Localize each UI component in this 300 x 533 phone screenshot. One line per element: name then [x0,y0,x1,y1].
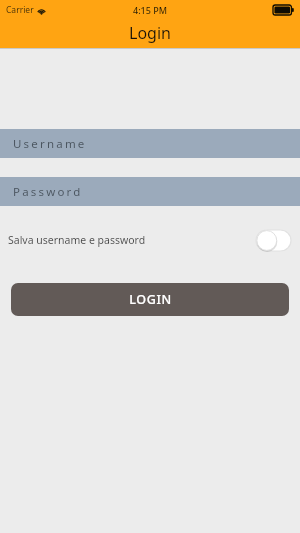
staticText: Username [13,136,87,152]
button[interactable]: Salva username e password toggle [256,230,291,251]
button[interactable]: LOGIN [11,283,289,316]
staticText: Salva username e password [8,233,146,247]
button[interactable]: Password [0,177,300,206]
button[interactable]: Username [0,129,300,158]
staticText: Login [129,22,171,44]
staticText: Carrier [6,4,34,16]
staticText: Password [13,184,83,200]
staticText: LOGIN [129,291,172,308]
button[interactable]: Salva username e password [0,225,300,255]
staticText: 4:15 PM [133,4,167,16]
